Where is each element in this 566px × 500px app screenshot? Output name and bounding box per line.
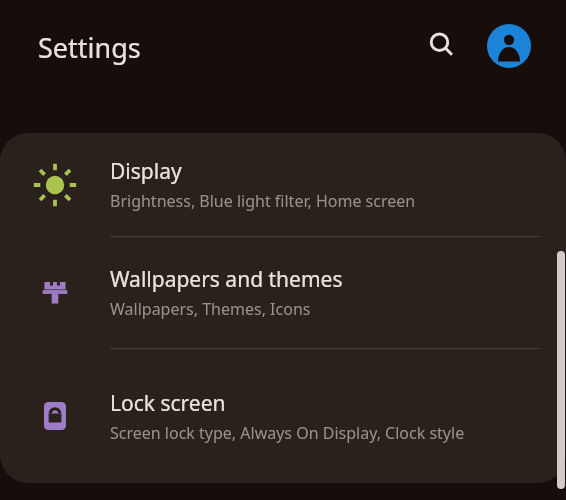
button[interactable]: Lock screen: [0, 349, 566, 483]
button[interactable]: Display: [0, 133, 566, 236]
staticText: Lock screen: [110, 389, 226, 418]
button[interactable]: Account: [486, 23, 532, 69]
staticText: Brightness, Blue light filter, Home scre…: [110, 190, 416, 212]
button[interactable]: Wallpapers and themes: [0, 237, 566, 348]
button[interactable]: Search: [418, 21, 466, 69]
staticText: Wallpapers and themes: [110, 265, 343, 294]
staticText: Settings: [38, 29, 141, 66]
staticText: Screen lock type, Always On Display, Clo…: [110, 422, 465, 444]
staticText: Display: [110, 157, 182, 186]
staticText: Wallpapers, Themes, Icons: [110, 298, 311, 320]
